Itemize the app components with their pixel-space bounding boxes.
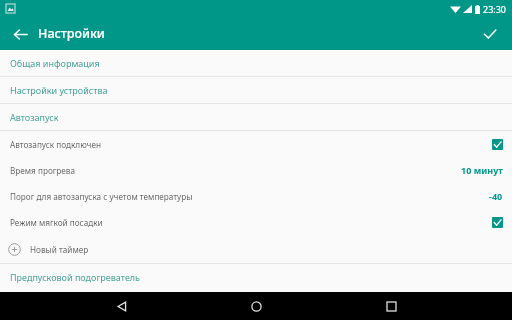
button[interactable]: Enabled (492, 217, 503, 228)
staticText: Режим мягкой посадки (10, 217, 492, 228)
button[interactable]: Recent apps (378, 293, 404, 319)
button[interactable]: Enabled (492, 139, 503, 150)
staticText: Порог для автозапуска с учетом температу… (10, 191, 489, 202)
staticText: 23:30 (483, 3, 507, 15)
button[interactable]: Настройки устройства (0, 77, 512, 103)
staticText: -40 (489, 190, 503, 202)
button[interactable]: Режим мягкой посадки (0, 209, 512, 235)
staticText: 10 минут (461, 164, 503, 176)
staticText: Настройки (38, 25, 105, 42)
staticText: Общая информация (10, 57, 100, 69)
staticText: Новый таймер (30, 244, 89, 255)
button[interactable]: Порог для автозапуска с учетом температу… (0, 183, 512, 209)
button[interactable]: Общая информация (0, 50, 512, 76)
button[interactable]: Новый таймер (0, 235, 512, 263)
staticText: Настройки устройства (10, 84, 108, 96)
button[interactable]: Автозапуск (0, 104, 512, 130)
staticText: Автозапуск (10, 111, 59, 123)
button[interactable]: Время прогрева (0, 157, 512, 183)
button[interactable]: Back (6, 20, 34, 48)
staticText: Автозапуск подключен (10, 139, 492, 150)
button[interactable]: Back (109, 293, 135, 319)
button[interactable]: Confirm (476, 20, 504, 48)
button[interactable]: Home (243, 293, 269, 319)
staticText: Время прогрева (10, 165, 461, 176)
button[interactable]: Автозапуск подключен (0, 131, 512, 157)
button[interactable]: Предпусковой подогреватель (0, 264, 512, 290)
staticText: Предпусковой подогреватель (10, 271, 141, 283)
